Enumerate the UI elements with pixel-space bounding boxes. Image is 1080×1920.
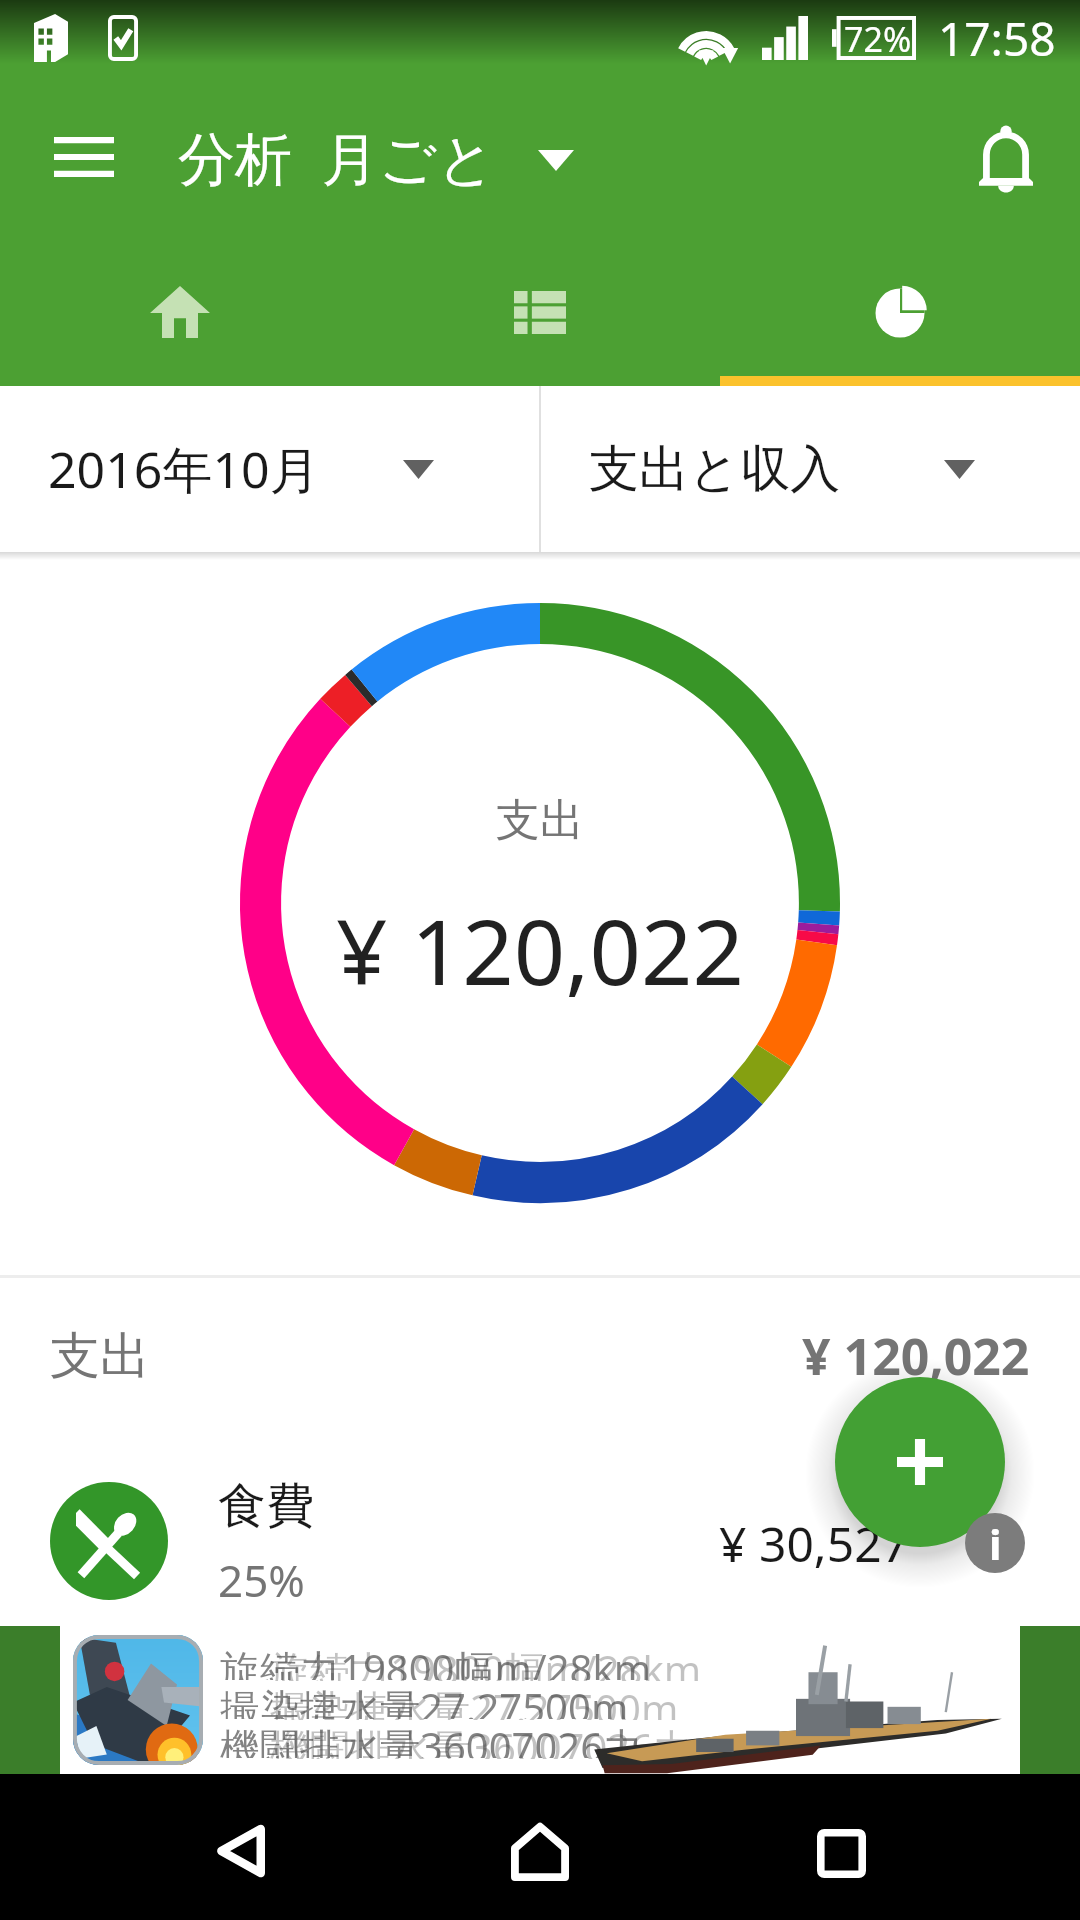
staticText: 機闘排水量36007026力 [270,1720,694,1759]
staticText: 支出と収入 [589,438,841,501]
button[interactable]: 支出と収入 [541,386,1080,552]
staticText: 72% [844,16,912,60]
button[interactable]: Info [965,1513,1025,1573]
staticText: 機闘排水量36007026力 [220,1719,644,1758]
staticText: 支出 [50,1325,150,1388]
staticText: 分析 月ごと [178,118,496,196]
staticText: 旋続力19800幅m/28km [270,1642,702,1681]
staticText: ¥ 120,022 [802,1322,1030,1390]
button[interactable]: Advertisement [0,1626,1080,1774]
staticText: 撮染捷水量27.27500m [220,1680,629,1719]
button[interactable]: Recents [751,1774,931,1920]
staticText: ¥ 120,022 [336,889,744,1012]
button[interactable]: 食費 [0,1434,1080,1626]
button[interactable]: Menu [24,104,144,210]
button[interactable]: Notifications [950,104,1062,210]
button[interactable]: Tab [360,238,720,386]
button[interactable]: Analysis tab [720,238,1080,386]
button[interactable]: Back [150,1774,330,1920]
button[interactable]: Home [450,1774,630,1920]
staticText: 25% [218,1550,305,1610]
staticText: 17:58 [938,7,1056,70]
staticText: ¥ 30,527 [719,1511,910,1576]
button[interactable]: Tab [0,238,360,386]
staticText: 撮染捷水量27.27500m [270,1681,679,1720]
button[interactable]: 2016年10月 [0,386,539,552]
staticText: 支出 [496,793,584,848]
staticText: 2016年10月 [48,435,320,503]
staticText: i [989,1515,1002,1572]
staticText: 食費 [218,1476,314,1536]
staticText: 旋続力19800幅m/28km [220,1641,652,1680]
button[interactable]: Add [835,1377,1005,1547]
